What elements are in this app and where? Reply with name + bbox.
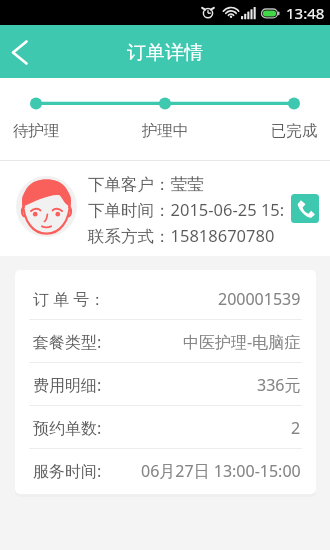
staticText: 已完成 <box>254 121 330 141</box>
button[interactable]: 订 单 号： <box>15 277 316 320</box>
button[interactable]: 费用明细: <box>15 363 316 406</box>
staticText: 套餐类型: <box>33 331 102 353</box>
staticText: 服务时间: <box>33 460 102 482</box>
button[interactable]: 待护理 <box>0 121 76 141</box>
staticText: 订 单 号： <box>33 288 106 310</box>
staticText: 待护理 <box>0 121 76 141</box>
staticText: 13:48 <box>286 3 325 23</box>
staticText: 中医护理-电脑症 <box>183 331 301 353</box>
staticText: 06月27日 13:00-15:00 <box>141 460 301 482</box>
button[interactable]: 套餐类型: <box>15 320 316 363</box>
staticText: 336元 <box>257 374 301 396</box>
staticText: 护理中 <box>125 121 205 141</box>
staticText: 订单详情 <box>127 41 203 65</box>
button[interactable]: Call <box>291 194 319 223</box>
button[interactable]: Back <box>0 25 42 78</box>
staticText: 费用明细: <box>33 374 102 396</box>
button[interactable]: Customer avatar <box>16 176 77 237</box>
button[interactable]: 服务时间: <box>15 449 316 492</box>
button[interactable]: 预约单数: <box>15 406 316 449</box>
staticText: 预约单数: <box>33 417 102 439</box>
button[interactable]: 护理中 <box>125 121 205 141</box>
staticText: 200001539 <box>218 288 301 310</box>
staticText: 下单时间：2015-06-25 15: <box>88 198 285 221</box>
button[interactable]: 已完成 <box>254 121 330 141</box>
staticText: 下单客户：莹莹 <box>88 174 204 195</box>
staticText: 2 <box>291 417 301 439</box>
staticText: 联系方式：15818670780 <box>88 224 275 247</box>
